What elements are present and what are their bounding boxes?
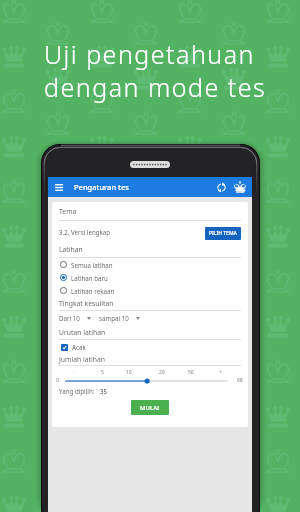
staticText: MULAI — [140, 404, 160, 412]
staticText: 10 — [126, 369, 132, 376]
button[interactable]: sampai 10 — [99, 314, 140, 322]
staticText: Tema — [59, 207, 77, 216]
staticText: Jumlah latihan — [59, 355, 105, 364]
staticText: Latihan rekaan — [71, 287, 115, 295]
button[interactable]: Semua latihan — [59, 258, 241, 271]
staticText: 5 — [101, 369, 104, 376]
button[interactable]: PILIH TEMA — [205, 227, 241, 240]
staticText: Urutan latihan — [59, 328, 106, 337]
staticText: Yang dipilih: — [59, 387, 95, 395]
button[interactable]: Chess king — [232, 179, 248, 195]
button[interactable]: MULAI — [131, 400, 169, 415]
staticText: Latihan — [59, 245, 83, 254]
staticText: Dari 10 — [59, 314, 80, 322]
staticText: + — [219, 369, 222, 376]
staticText: 0 — [56, 377, 59, 384]
staticText: Semua latihan — [71, 261, 113, 269]
button[interactable]: Latihan baru — [59, 271, 241, 284]
staticText: Uji pengetahuan — [44, 37, 255, 71]
staticText: Latihan baru — [71, 274, 108, 282]
button[interactable]: Dari 10 — [59, 314, 91, 322]
staticText: sampai 10 — [99, 314, 129, 322]
button[interactable]: Menu — [52, 180, 66, 194]
staticText: Acak — [72, 343, 86, 351]
button[interactable]: Latihan rekaan — [59, 284, 241, 297]
staticText: Pengaturan tes — [74, 182, 129, 192]
staticText: Tingkat kesulitan — [59, 299, 114, 308]
button[interactable]: Acak — [59, 340, 241, 354]
button[interactable]: Jumlah latihan slider — [59, 366, 241, 385]
staticText: 20 — [159, 369, 165, 376]
staticText: PILIH TEMA — [209, 230, 237, 237]
staticText: dengan mode tes — [44, 70, 267, 104]
staticText: 50 — [188, 369, 194, 376]
staticText: 35 — [100, 387, 108, 395]
button[interactable]: Refresh — [213, 179, 229, 195]
staticText: 68 — [237, 377, 243, 384]
staticText: · — [73, 369, 75, 376]
staticText: 3.2. Versi lengkap — [59, 228, 111, 236]
